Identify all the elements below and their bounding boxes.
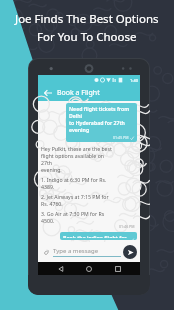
button[interactable]: Recents [112, 263, 124, 275]
staticText: 4500. [41, 217, 55, 224]
staticText: flight options available on 27th [41, 152, 116, 166]
staticText: to Hyderabad for 27th [69, 119, 125, 126]
button[interactable]: Attach [41, 247, 51, 257]
staticText: Type a message [53, 247, 99, 255]
staticText: For You To Choose [37, 29, 137, 45]
button[interactable]: Book the indigo flight for me [60, 232, 137, 240]
staticText: Book a Flight [57, 88, 100, 98]
staticText: Rs. 4760. [41, 200, 63, 207]
staticText: 4389. [41, 183, 55, 190]
staticText: 2. Jet Airways at 7:15 PM for [41, 193, 109, 200]
staticText: Joe Finds The Best Options [15, 11, 159, 27]
button[interactable]: Home [83, 263, 95, 275]
button[interactable]: Back [55, 263, 67, 275]
staticText: Need flight tickets from Delhi [69, 105, 134, 119]
button[interactable]: Send [123, 245, 137, 259]
button[interactable]: Type a message [53, 247, 121, 257]
button[interactable]: Back [42, 87, 53, 98]
staticText: evening. [41, 166, 62, 173]
button[interactable]: Need flight tickets from Delhi [66, 103, 137, 142]
staticText: 01:45 PM [113, 135, 129, 140]
staticText: 1:40 [130, 78, 138, 83]
staticText: Hey Pulkit, these are the best [41, 145, 112, 152]
staticText: Book the indigo flight for me [63, 234, 134, 238]
staticText: 01:46 PM [119, 224, 135, 229]
staticText: evening [69, 126, 90, 133]
staticText: 1. Indigo at 6:30 PM for Rs. [41, 176, 107, 183]
staticText: 3. Go Air at 7:30 PM for Rs [41, 210, 105, 217]
